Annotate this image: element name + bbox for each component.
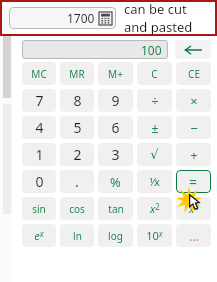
button[interactable]: 9 — [98, 89, 133, 112]
button[interactable]: log — [98, 224, 133, 247]
staticText: 6 — [111, 118, 120, 137]
staticText: 2 — [73, 145, 82, 164]
staticText: 1 — [35, 145, 44, 164]
button[interactable]: − — [176, 116, 211, 139]
staticText: log — [108, 229, 123, 243]
staticText: 8 — [73, 91, 82, 110]
button[interactable]: 6 — [98, 116, 133, 139]
staticText: C — [151, 67, 158, 81]
staticText: √ — [150, 147, 159, 162]
button[interactable]: ÷ — [137, 89, 172, 112]
staticText: 1700 — [67, 10, 95, 26]
button[interactable]: 10x — [137, 224, 172, 247]
staticText: ± — [151, 119, 159, 137]
staticText: can be cut — [124, 0, 187, 18]
button[interactable]: 5 — [60, 116, 94, 139]
staticText: ÷ — [151, 92, 159, 110]
button[interactable]: ln — [60, 224, 94, 247]
button[interactable]: cos — [60, 197, 94, 220]
staticText: x3 — [189, 201, 199, 216]
staticText: − — [190, 119, 198, 137]
staticText: . — [75, 172, 79, 191]
button[interactable]: 100 — [22, 40, 168, 59]
button[interactable]: … — [176, 224, 211, 247]
button[interactable]: 2 — [60, 143, 94, 166]
staticText: tan — [108, 202, 124, 216]
button[interactable]: 1 — [22, 143, 56, 166]
staticText: cos — [69, 202, 85, 216]
button[interactable]: + — [176, 143, 211, 166]
staticText: MC — [31, 67, 47, 81]
button[interactable]: ± — [137, 116, 172, 139]
button[interactable]: . — [60, 170, 94, 193]
staticText: 0 — [35, 172, 44, 191]
staticText: sin — [32, 202, 46, 216]
staticText: CE — [188, 67, 200, 81]
staticText: = — [189, 172, 198, 191]
staticText: + — [190, 146, 198, 164]
staticText: and pasted — [124, 18, 193, 36]
button[interactable]: x3 — [176, 197, 211, 220]
button[interactable]: √ — [137, 143, 172, 166]
button[interactable]: 0 — [22, 170, 56, 193]
button[interactable]: 7 — [22, 89, 56, 112]
staticText: 9 — [111, 91, 120, 110]
staticText: … — [189, 228, 199, 244]
staticText: x2 — [150, 201, 160, 216]
staticText: M+ — [108, 67, 123, 81]
button[interactable]: M+ — [98, 62, 133, 85]
staticText: ex — [34, 228, 44, 243]
button[interactable]: MC — [22, 62, 56, 85]
staticText: ln — [73, 229, 82, 243]
button[interactable]: % — [98, 170, 133, 193]
staticText: × — [190, 92, 198, 110]
staticText: ⅟x — [149, 174, 160, 189]
button[interactable]: Equals — [176, 170, 211, 193]
staticText: % — [110, 173, 121, 191]
staticText: 100 — [141, 42, 162, 58]
staticText: 4 — [35, 118, 44, 137]
button[interactable]: Backspace — [175, 40, 211, 59]
staticText: 5 — [73, 118, 82, 137]
button[interactable]: C — [137, 62, 172, 85]
button[interactable]: MR — [60, 62, 94, 85]
button[interactable]: × — [176, 89, 211, 112]
staticText: 3 — [111, 145, 120, 164]
button[interactable]: CE — [176, 62, 211, 85]
staticText: 10x — [146, 228, 163, 243]
button[interactable]: 8 — [60, 89, 94, 112]
button[interactable]: sin — [22, 197, 56, 220]
button[interactable]: tan — [98, 197, 133, 220]
staticText: 7 — [35, 91, 44, 110]
button[interactable]: x2 — [137, 197, 172, 220]
button[interactable]: 4 — [22, 116, 56, 139]
staticText: MR — [69, 67, 85, 81]
button[interactable]: ex — [22, 224, 56, 247]
button[interactable]: ⅟x — [137, 170, 172, 193]
button[interactable]: 3 — [98, 143, 133, 166]
button[interactable]: 1700 — [9, 7, 116, 29]
